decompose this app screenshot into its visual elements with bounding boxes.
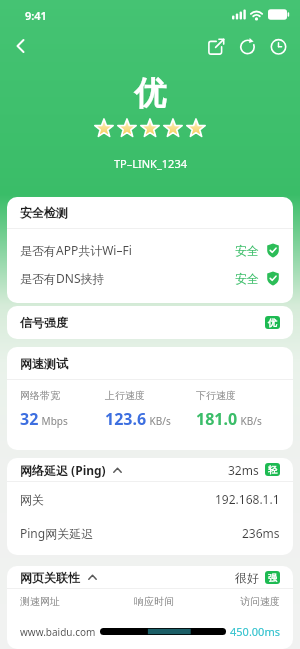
- button[interactable]: [201, 30, 232, 62]
- button[interactable]: 轻: [265, 463, 280, 476]
- staticText: 响应时间: [134, 595, 174, 608]
- button[interactable]: [0, 30, 42, 62]
- staticText: 安全: [235, 271, 259, 286]
- staticText: 网络带宽: [20, 389, 60, 402]
- staticText: 181.0: [196, 408, 238, 430]
- button[interactable]: 网页关联性: [20, 566, 280, 588]
- staticText: Ping网关延迟: [20, 525, 94, 541]
- staticText: 9:41: [25, 8, 47, 23]
- button[interactable]: 优: [265, 316, 280, 329]
- button[interactable]: 是否有APP共计Wi–Fi: [20, 236, 280, 264]
- staticText: 测速网址: [20, 595, 60, 608]
- staticText: 优: [268, 317, 277, 328]
- staticText: 网速测试: [20, 356, 68, 371]
- staticText: 网络延迟 (Ping): [20, 462, 106, 478]
- staticText: 上行速度: [105, 389, 145, 402]
- button[interactable]: [263, 30, 294, 62]
- staticText: KB/s: [147, 414, 171, 428]
- staticText: 192.168.1.1: [215, 491, 280, 507]
- staticText: TP–LINK_1234: [114, 156, 187, 171]
- staticText: Mbps: [39, 414, 68, 428]
- button[interactable]: 强: [265, 571, 280, 584]
- staticText: 450.00ms: [230, 624, 280, 639]
- staticText: 123.6: [105, 408, 147, 430]
- staticText: KB/s: [238, 414, 262, 428]
- button[interactable]: www.baidu.com: [20, 614, 280, 649]
- button[interactable]: 网络延迟 (Ping): [20, 458, 280, 481]
- staticText: 轻: [268, 464, 277, 475]
- button[interactable]: 信号强度: [20, 306, 280, 339]
- staticText: 32: [20, 408, 39, 430]
- button[interactable]: [232, 30, 263, 62]
- staticText: 32ms: [228, 462, 259, 478]
- staticText: 网关: [20, 492, 44, 507]
- staticText: 安全检测: [20, 205, 68, 220]
- staticText: 236ms: [242, 525, 280, 541]
- staticText: 优: [134, 73, 166, 113]
- staticText: www.baidu.com: [20, 625, 96, 639]
- staticText: 安全: [235, 243, 259, 258]
- staticText: 访问速度: [240, 595, 280, 608]
- button[interactable]: 是否有DNS挟持: [20, 264, 280, 292]
- staticText: 是否有APP共计Wi–Fi: [20, 242, 132, 258]
- staticText: 是否有DNS挟持: [20, 270, 105, 286]
- staticText: 信号强度: [20, 315, 68, 330]
- staticText: 很好: [235, 570, 259, 585]
- staticText: 网页关联性: [20, 570, 80, 585]
- staticText: 下行速度: [196, 389, 236, 402]
- staticText: 强: [268, 572, 277, 583]
